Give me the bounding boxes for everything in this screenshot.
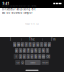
- staticText: j: [39, 48, 40, 53]
- button[interactable]: z: [19, 54, 22, 59]
- staticText: Today 9:41 AM: [25, 22, 39, 25]
- staticText: 123: [16, 61, 19, 64]
- staticText: Lorem ipsum dolor sit amet: [1, 4, 36, 8]
- button[interactable]: x: [23, 54, 26, 59]
- button[interactable]: j: [38, 48, 41, 53]
- button[interactable]: m: [42, 54, 45, 59]
- staticText: return: [42, 61, 48, 64]
- staticText: t: [30, 42, 31, 47]
- staticText: m: [42, 54, 45, 59]
- button[interactable]: w: [17, 42, 20, 47]
- staticText: e: [21, 42, 23, 47]
- button[interactable]: ⌫: [46, 54, 50, 59]
- staticText: y: [33, 42, 35, 47]
- staticText: I'm: [51, 38, 56, 41]
- button[interactable]: I: [0, 37, 21, 42]
- button[interactable]: v: [30, 54, 34, 59]
- staticText: b: [35, 54, 37, 59]
- staticText: r: [26, 42, 27, 47]
- button[interactable]: d: [23, 48, 26, 53]
- staticText: ☺: [21, 61, 24, 64]
- button[interactable]: space: [25, 60, 41, 65]
- button[interactable]: k: [42, 48, 45, 53]
- staticText: d: [23, 48, 25, 53]
- button[interactable]: h: [34, 48, 37, 53]
- button[interactable]: n: [38, 54, 41, 59]
- button[interactable]: q: [13, 42, 16, 47]
- button[interactable]: e: [21, 42, 24, 47]
- staticText: o: [44, 42, 46, 47]
- staticText: I: [10, 38, 11, 41]
- staticText: k: [43, 48, 45, 53]
- staticText: v: [31, 54, 33, 59]
- staticText: c: [28, 54, 29, 59]
- button[interactable]: The: [21, 37, 42, 42]
- staticText: The: [29, 38, 35, 41]
- staticText: z: [20, 54, 21, 59]
- staticText: a: [16, 48, 18, 53]
- staticText: ⌫: [46, 55, 50, 58]
- button[interactable]: ⇧: [14, 54, 18, 59]
- staticText: f: [28, 48, 29, 53]
- staticText: 9:41: [2, 1, 9, 5]
- staticText: n: [39, 54, 41, 59]
- button[interactable]: u: [36, 42, 39, 47]
- staticText: p: [48, 42, 50, 47]
- staticText: consectetur adipiscing elit: [1, 7, 35, 11]
- staticText: sed do eiusmod tempor: [1, 11, 32, 14]
- button[interactable]: I'm: [43, 37, 64, 42]
- staticText: x: [23, 54, 25, 59]
- staticText: i: [41, 42, 42, 47]
- button[interactable]: c: [26, 54, 30, 59]
- button[interactable]: r: [25, 42, 28, 47]
- button[interactable]: s: [19, 48, 22, 53]
- staticText: l: [47, 48, 48, 53]
- button[interactable]: g: [30, 48, 34, 53]
- button[interactable]: f: [26, 48, 30, 53]
- button[interactable]: l: [46, 48, 49, 53]
- button[interactable]: b: [34, 54, 37, 59]
- button[interactable]: y: [32, 42, 36, 47]
- staticText: s: [20, 48, 21, 53]
- button[interactable]: t: [28, 42, 32, 47]
- staticText: u: [37, 42, 39, 47]
- staticText: space: [30, 61, 35, 64]
- button[interactable]: return: [41, 60, 49, 65]
- button[interactable]: a: [15, 48, 18, 53]
- staticText: w: [17, 42, 19, 47]
- staticText: ⇧: [15, 55, 17, 58]
- button[interactable]: o: [44, 42, 47, 47]
- button[interactable]: i: [40, 42, 43, 47]
- button[interactable]: ☺: [21, 60, 24, 65]
- staticText: g: [31, 48, 33, 53]
- button[interactable]: p: [48, 42, 51, 47]
- staticText: h: [35, 48, 37, 53]
- staticText: q: [14, 42, 16, 47]
- button[interactable]: 123: [15, 60, 20, 65]
